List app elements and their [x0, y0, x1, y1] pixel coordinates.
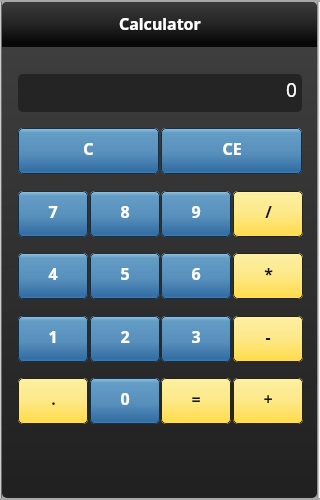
button[interactable]: 5 [90, 253, 160, 299]
button[interactable]: 4 [18, 253, 88, 299]
button[interactable]: 6 [161, 253, 231, 299]
staticText: 1 [48, 326, 58, 348]
button[interactable]: CE [161, 128, 302, 174]
button[interactable]: 8 [90, 191, 160, 237]
button[interactable]: / [233, 191, 303, 237]
staticText: CE [222, 138, 242, 160]
staticText: 2 [120, 326, 130, 348]
staticText: / [265, 201, 272, 223]
staticText: 8 [120, 201, 130, 223]
staticText: 3 [191, 326, 201, 348]
button[interactable]: 3 [161, 316, 231, 362]
button[interactable]: 9 [161, 191, 231, 237]
button[interactable]: = [161, 378, 231, 424]
staticText: 6 [191, 263, 201, 285]
button[interactable]: 7 [18, 191, 88, 237]
button[interactable]: 0 [90, 378, 160, 424]
staticText: . [51, 388, 56, 410]
staticText: 4 [48, 263, 58, 285]
button[interactable]: 2 [90, 316, 160, 362]
button[interactable]: C [18, 128, 159, 174]
staticText: 0 [286, 77, 297, 103]
button[interactable]: * [233, 253, 303, 299]
button[interactable]: + [233, 378, 303, 424]
staticText: 7 [48, 201, 58, 223]
staticText: 9 [191, 201, 201, 223]
button[interactable]: 1 [18, 316, 88, 362]
staticText: 5 [120, 263, 130, 285]
staticText: 0 [120, 388, 130, 410]
staticText: - [265, 326, 271, 348]
staticText: = [191, 388, 201, 410]
button[interactable]: . [18, 378, 88, 424]
staticText: + [263, 388, 273, 410]
staticText: * [264, 263, 273, 285]
staticText: C [83, 138, 94, 160]
button[interactable]: - [233, 316, 303, 362]
staticText: Calculator [119, 13, 201, 35]
